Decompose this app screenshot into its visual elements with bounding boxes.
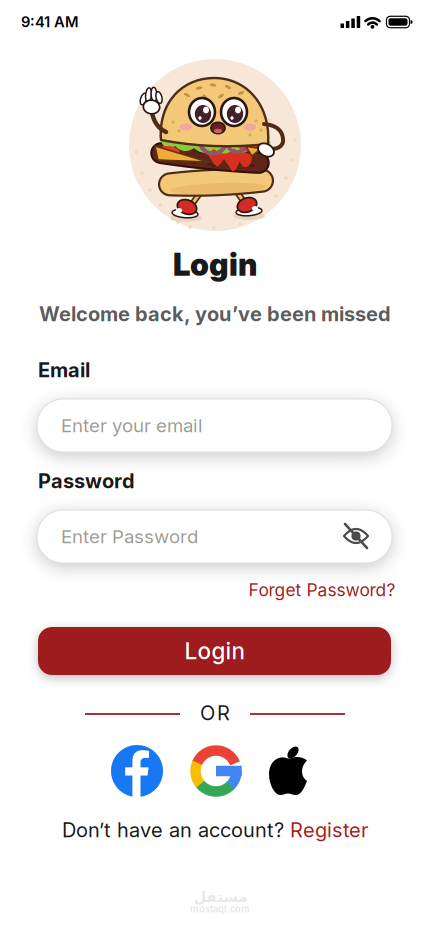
staticText: مستقل [193, 889, 247, 905]
staticText: Email [38, 358, 90, 382]
button[interactable]: Continue with Apple [265, 745, 311, 797]
staticText: Forget Password? [248, 580, 395, 600]
button[interactable]: Login [38, 627, 391, 675]
staticText: OR [200, 701, 230, 725]
staticText: Don’t have an account? [62, 818, 284, 842]
staticText: mostaql.com [190, 903, 250, 914]
staticText: Login [173, 246, 257, 283]
staticText: 9:41 AM [21, 13, 79, 31]
button[interactable]: Show password [336, 516, 376, 556]
staticText: Enter your email [61, 414, 203, 436]
button[interactable]: Forget Password? [248, 580, 395, 600]
button[interactable]: Continue with Google [190, 745, 242, 797]
staticText: Register [290, 818, 368, 842]
button[interactable]: Continue with Facebook [111, 745, 163, 797]
textField[interactable]: Enter your email [61, 414, 392, 436]
button[interactable]: Register [290, 818, 368, 842]
staticText: Password [38, 469, 135, 493]
staticText: Enter Password [61, 525, 198, 547]
staticText: Login [184, 638, 244, 664]
secureTextField[interactable]: Enter Password [61, 525, 392, 547]
staticText: Welcome back, you’ve been missed [39, 302, 391, 326]
